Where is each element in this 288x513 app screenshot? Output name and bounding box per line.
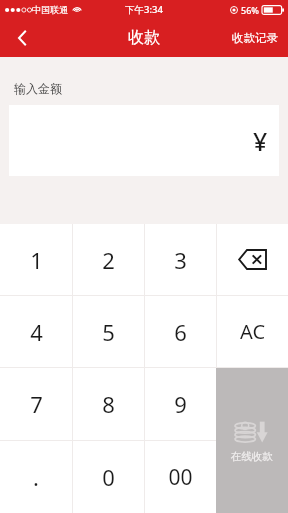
staticText: 输入金额 (14, 81, 62, 96)
button[interactable]: 0 (73, 441, 144, 513)
staticText: . (33, 462, 39, 492)
staticText: 下午3:34 (125, 3, 163, 16)
button[interactable]: 9 (145, 368, 216, 440)
button[interactable]: 收款记录 (222, 19, 288, 57)
staticText: 3 (174, 245, 187, 275)
button[interactable]: 2 (73, 224, 144, 295)
staticText: 收款 (128, 28, 160, 48)
staticText: 9 (174, 389, 187, 419)
button[interactable]: 6 (145, 296, 216, 367)
button[interactable]: AC (217, 296, 288, 367)
staticText: 在线收款 (231, 450, 273, 463)
staticText: 2 (102, 245, 115, 275)
button[interactable]: 在线收款 (216, 368, 288, 513)
staticText: ¥ (253, 124, 268, 158)
staticText: 1 (30, 245, 43, 275)
button[interactable]: ¥ (9, 105, 279, 176)
staticText: 6 (174, 317, 187, 347)
staticText: 4 (30, 317, 43, 347)
staticText: 中国联通 (32, 4, 68, 15)
staticText: 0 (102, 462, 115, 492)
button[interactable]: 4 (0, 296, 72, 367)
staticText: 00 (168, 463, 193, 492)
button[interactable]: Delete (217, 224, 288, 295)
button[interactable]: 7 (0, 368, 72, 440)
button[interactable]: . (0, 441, 72, 513)
button[interactable]: 5 (73, 296, 144, 367)
staticText: 收款记录 (232, 31, 278, 45)
staticText: 56% (241, 4, 259, 16)
staticText: 5 (102, 317, 115, 347)
button[interactable]: 8 (73, 368, 144, 440)
staticText: AC (240, 318, 266, 345)
button[interactable]: Back (0, 19, 44, 57)
staticText: 7 (30, 389, 43, 419)
button[interactable]: 1 (0, 224, 72, 295)
button[interactable]: 3 (145, 224, 216, 295)
staticText: 8 (102, 389, 115, 419)
button[interactable]: 00 (145, 441, 216, 513)
